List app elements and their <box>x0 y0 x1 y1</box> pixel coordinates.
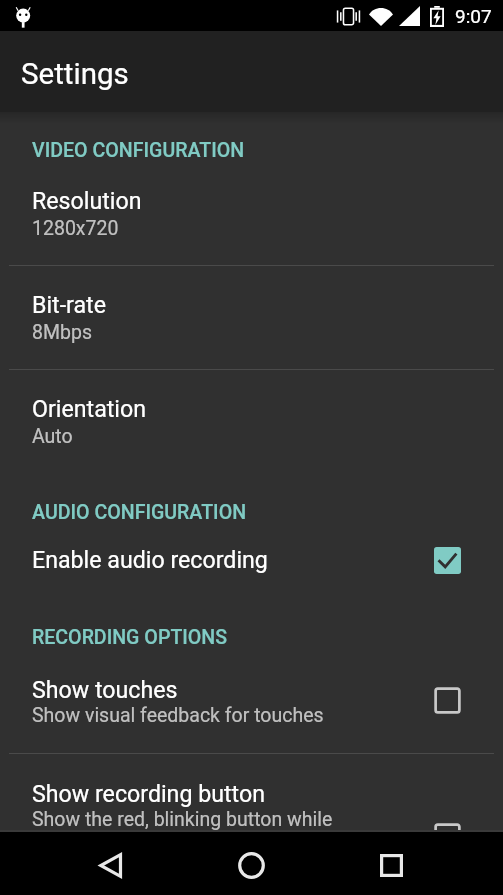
staticText: Settings <box>21 57 129 92</box>
button[interactable]: Back <box>84 839 137 892</box>
button[interactable]: Recents <box>365 839 418 892</box>
staticText: AUDIO CONFIGURATION <box>32 501 247 524</box>
staticText: VIDEO CONFIGURATION <box>32 139 245 162</box>
button[interactable]: Show touches <box>0 649 503 753</box>
staticText: 8Mbps <box>32 321 92 344</box>
staticText: Resolution <box>32 187 142 214</box>
button[interactable]: Show recording button <box>0 754 503 857</box>
other: Checked <box>434 547 461 574</box>
staticText: Bit-rate <box>32 291 106 318</box>
staticText: Show recording button <box>32 780 265 807</box>
other: Debug <box>9 3 31 29</box>
other: Unchecked <box>434 687 461 714</box>
button[interactable]: Bit-rate <box>0 266 503 369</box>
staticText: Enable audio recording <box>32 546 268 573</box>
button[interactable]: Home <box>225 839 278 892</box>
button[interactable]: Resolution <box>0 162 503 265</box>
button[interactable]: Enable audio recording <box>0 524 503 606</box>
button[interactable]: Orientation <box>0 370 503 473</box>
other: Unchecked <box>434 823 461 850</box>
staticText: 1280x720 <box>32 217 119 240</box>
staticText: Show touches <box>32 676 178 703</box>
staticText: Auto <box>32 425 73 448</box>
staticText: 9:07 <box>455 5 492 27</box>
staticText: Orientation <box>32 395 147 422</box>
staticText: Show visual feedback for touches <box>32 704 324 727</box>
staticText: RECORDING OPTIONS <box>32 626 228 649</box>
staticText: Show the red, blinking button while <box>32 808 333 831</box>
